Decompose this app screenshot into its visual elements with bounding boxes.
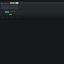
button[interactable]: Library [10,15,15,20]
button[interactable] [0,4,64,10]
button[interactable] [10,2,20,4]
button[interactable] [0,10,64,13]
button[interactable]: Search [5,15,10,20]
button[interactable]: Home [0,15,5,20]
button[interactable]: Menu [0,2,3,4]
button[interactable]: Profile [15,15,20,20]
button[interactable] [0,13,64,15]
